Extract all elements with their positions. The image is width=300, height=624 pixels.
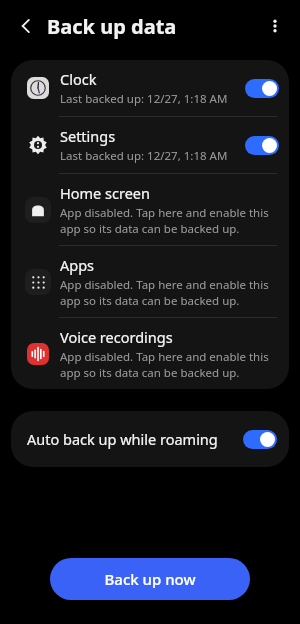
button[interactable]: More options	[258, 9, 292, 43]
button[interactable]: Voice recordings	[11, 318, 289, 389]
staticText: App disabled. Tap here and enable this a…	[60, 205, 273, 236]
staticText: App disabled. Tap here and enable this a…	[60, 349, 273, 380]
staticText: Clock	[60, 69, 97, 89]
button[interactable]: Toggle	[245, 79, 279, 98]
button[interactable]: Back up now	[50, 558, 250, 600]
staticText: Voice recordings	[60, 327, 173, 347]
button[interactable]: Back	[10, 10, 42, 42]
staticText: Auto back up while roaming	[27, 429, 227, 449]
button[interactable]: Home screen	[11, 174, 289, 245]
staticText: Back up data	[47, 13, 177, 40]
staticText: App disabled. Tap here and enable this a…	[60, 277, 273, 308]
staticText: Settings	[60, 126, 116, 146]
button[interactable]: Auto back up while roaming	[11, 411, 289, 467]
staticText: Back up now	[104, 569, 196, 589]
staticText: Last backed up: 12/27, 1:18 AM	[60, 148, 228, 164]
staticText: Last backed up: 12/27, 1:18 AM	[60, 91, 228, 107]
button[interactable]: Clock	[11, 60, 289, 116]
staticText: Apps	[60, 255, 95, 275]
button[interactable]: Toggle	[243, 430, 277, 449]
staticText: Home screen	[60, 183, 150, 203]
button[interactable]: Settings	[11, 117, 289, 173]
button[interactable]: Apps	[11, 246, 289, 317]
button[interactable]: Toggle	[245, 136, 279, 155]
